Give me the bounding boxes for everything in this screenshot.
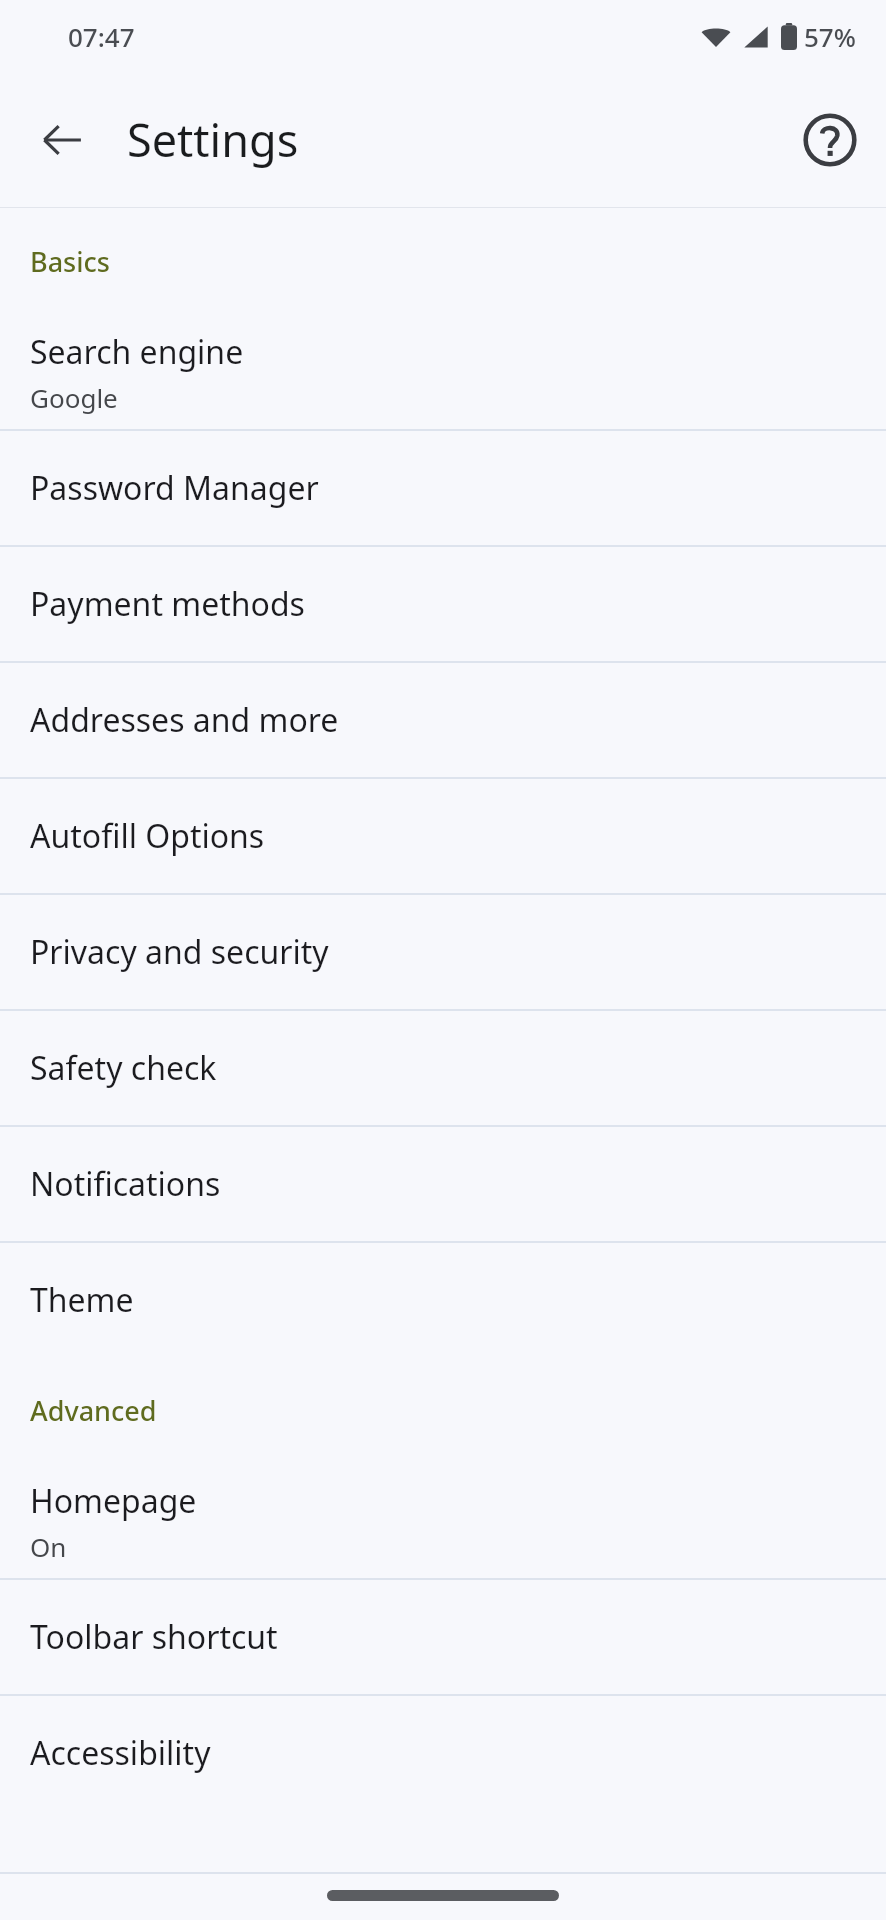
- staticText: Autofill Options: [30, 814, 265, 858]
- button[interactable]: Password Manager: [0, 431, 886, 545]
- button[interactable]: Search engine: [0, 315, 886, 429]
- staticText: Payment methods: [30, 582, 305, 626]
- button[interactable]: Privacy and security: [0, 895, 886, 1009]
- button[interactable]: Safety check: [0, 1011, 886, 1125]
- staticText: 07:47: [68, 19, 135, 54]
- staticText: Advanced: [30, 1392, 157, 1429]
- button[interactable]: Back: [18, 96, 106, 184]
- button[interactable]: Toolbar shortcut: [0, 1580, 886, 1694]
- staticText: On: [30, 1529, 67, 1564]
- staticText: Privacy and security: [30, 930, 329, 974]
- button[interactable]: Accessibility: [0, 1696, 886, 1810]
- staticText: Settings: [127, 109, 299, 170]
- staticText: Safety check: [30, 1046, 217, 1090]
- staticText: Homepage: [30, 1479, 197, 1523]
- button[interactable]: Help: [786, 96, 874, 184]
- staticText: Search engine: [30, 330, 244, 374]
- button[interactable]: Addresses and more: [0, 663, 886, 777]
- staticText: Google: [30, 380, 118, 415]
- staticText: Basics: [30, 243, 110, 280]
- staticText: Toolbar shortcut: [30, 1615, 278, 1659]
- staticText: Notifications: [30, 1162, 221, 1206]
- button[interactable]: Payment methods: [0, 547, 886, 661]
- button[interactable]: Notifications: [0, 1127, 886, 1241]
- button[interactable]: Theme: [0, 1243, 886, 1357]
- staticText: 57%: [804, 19, 856, 54]
- staticText: Accessibility: [30, 1731, 211, 1775]
- button[interactable]: Homepage: [0, 1464, 886, 1578]
- staticText: Theme: [30, 1278, 134, 1322]
- staticText: Password Manager: [30, 466, 319, 510]
- staticText: Addresses and more: [30, 698, 339, 742]
- button[interactable]: Autofill Options: [0, 779, 886, 893]
